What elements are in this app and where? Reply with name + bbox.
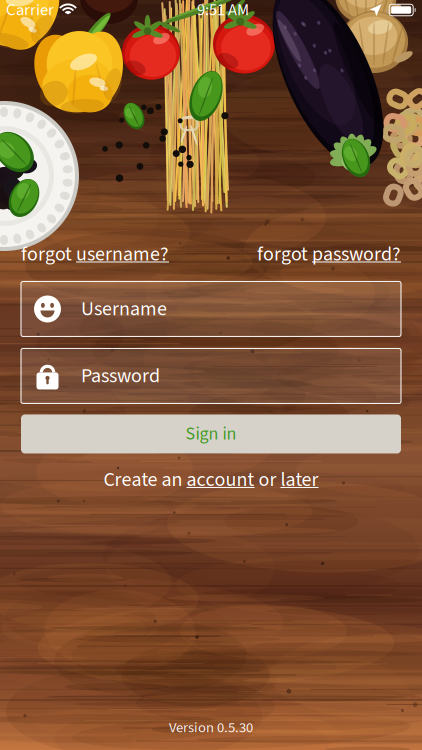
button[interactable]: forgot <box>21 240 169 268</box>
staticText: Carrier <box>6 0 54 22</box>
staticText: Password <box>81 362 160 390</box>
staticText: 9:51 AM <box>197 0 249 22</box>
staticText: Version 0.5.30 <box>169 717 253 738</box>
staticText: or <box>254 465 280 494</box>
button[interactable]: later <box>280 465 318 494</box>
staticText: password? <box>312 240 401 268</box>
staticText: account <box>186 465 254 494</box>
button[interactable]: forgot <box>257 240 401 268</box>
staticText: Create an <box>103 465 186 494</box>
button[interactable]: Sign in <box>21 414 401 453</box>
staticText: later <box>280 465 318 494</box>
staticText: username? <box>76 240 169 268</box>
button[interactable]: account <box>186 465 254 494</box>
staticText: forgot <box>21 240 76 268</box>
staticText: forgot <box>257 240 312 268</box>
button[interactable]: Username <box>21 281 401 336</box>
staticText: Username <box>81 295 167 323</box>
staticText: Sign in <box>185 421 236 447</box>
button[interactable]: Password <box>21 348 401 403</box>
